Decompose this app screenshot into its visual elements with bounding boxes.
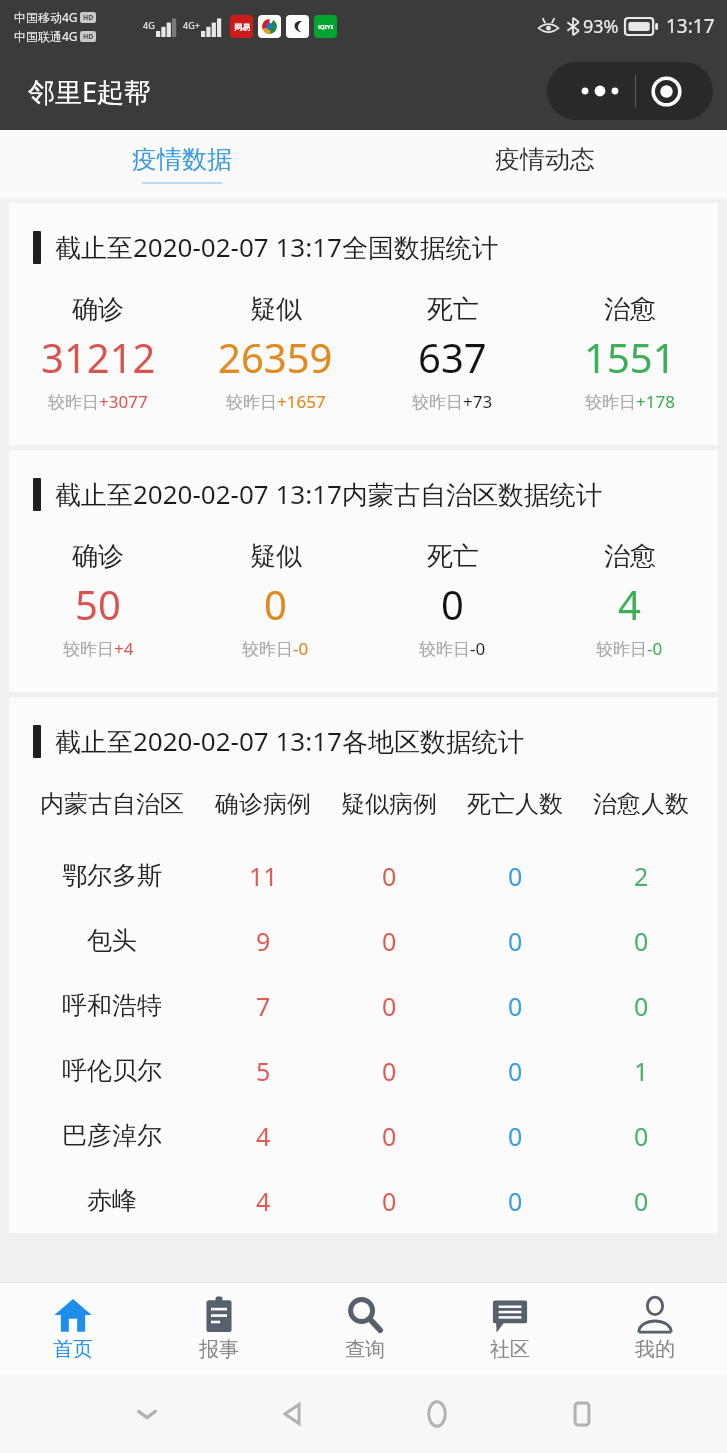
- button[interactable]: Recents: [509, 1375, 654, 1453]
- button[interactable]: 首页: [0, 1283, 146, 1375]
- staticText: 截止至2020-02-07 13:17各地区数据统计: [55, 723, 524, 759]
- staticText: 较昨日-0: [596, 637, 663, 660]
- staticText: 0: [382, 1054, 397, 1088]
- button[interactable]: 呼伦贝尔: [23, 1038, 704, 1103]
- staticText: 包头: [87, 925, 137, 956]
- staticText: 0: [441, 577, 464, 631]
- button[interactable]: 疫情数据: [0, 130, 363, 198]
- staticText: 中国联通4G: [14, 28, 78, 44]
- button[interactable]: Back: [219, 1375, 364, 1453]
- button[interactable]: 疫情动态: [363, 130, 727, 198]
- staticText: 确诊: [72, 540, 124, 573]
- staticText: 0: [382, 1184, 397, 1218]
- button[interactable]: 报事: [146, 1283, 292, 1375]
- button[interactable]: Hide: [74, 1375, 219, 1453]
- staticText: 4: [256, 1119, 271, 1153]
- staticText: 1551: [584, 330, 676, 384]
- staticText: 0: [508, 1054, 523, 1088]
- staticText: 较昨日+73: [412, 390, 493, 413]
- staticText: 较昨日+1657: [226, 390, 326, 413]
- staticText: 4: [618, 577, 641, 631]
- staticText: 0: [382, 989, 397, 1023]
- staticText: 呼和浩特: [62, 990, 162, 1021]
- staticText: 4G: [143, 19, 155, 31]
- staticText: 0: [508, 1184, 523, 1218]
- button[interactable]: 社区: [437, 1283, 582, 1375]
- staticText: 较昨日+3077: [48, 390, 148, 413]
- staticText: 0: [634, 1119, 649, 1153]
- staticText: 637: [418, 330, 487, 384]
- staticText: 网易: [234, 22, 250, 32]
- staticText: 巴彦淖尔: [62, 1120, 162, 1151]
- staticText: 0: [508, 924, 523, 958]
- staticText: 我的: [635, 1337, 675, 1362]
- staticText: 0: [382, 1119, 397, 1153]
- staticText: 较昨日-0: [242, 637, 309, 660]
- button[interactable]: 巴彦淖尔: [23, 1103, 704, 1168]
- staticText: 9: [256, 924, 271, 958]
- staticText: 0: [634, 924, 649, 958]
- button[interactable]: 包头: [23, 908, 704, 973]
- staticText: 2: [634, 859, 649, 893]
- staticText: HD: [83, 13, 94, 23]
- staticText: 11: [249, 859, 278, 893]
- staticText: 疫情数据: [132, 144, 232, 175]
- staticText: 93%: [583, 14, 619, 39]
- staticText: 疑似: [250, 293, 302, 326]
- staticText: 0: [634, 1184, 649, 1218]
- staticText: 50: [75, 577, 121, 631]
- staticText: 0: [508, 1119, 523, 1153]
- staticText: iQIYI: [318, 23, 333, 31]
- staticText: 5: [256, 1054, 271, 1088]
- button[interactable]: 赤峰: [23, 1168, 704, 1233]
- staticText: 较昨日+178: [585, 390, 675, 413]
- staticText: 疑似病例: [341, 789, 437, 819]
- staticText: 呼伦贝尔: [62, 1055, 162, 1086]
- staticText: 13:17: [666, 13, 715, 39]
- staticText: 死亡: [427, 293, 479, 326]
- staticText: 确诊: [72, 293, 124, 326]
- button[interactable]: 查询: [292, 1283, 437, 1375]
- staticText: 0: [508, 859, 523, 893]
- staticText: 治愈: [604, 540, 656, 573]
- staticText: 较昨日-0: [419, 637, 486, 660]
- staticText: 首页: [53, 1337, 93, 1362]
- staticText: 0: [508, 989, 523, 1023]
- staticText: 邻里E起帮: [28, 73, 152, 110]
- staticText: 4G+: [183, 19, 200, 31]
- button[interactable]: 截止至2020-02-07 13:17内蒙古自治区数据统计: [9, 450, 718, 692]
- staticText: 0: [264, 577, 287, 631]
- button[interactable]: 鄂尔多斯: [23, 843, 704, 908]
- staticText: 中国移动4G: [14, 9, 78, 25]
- staticText: 0: [382, 859, 397, 893]
- button[interactable]: Menu and exit: [547, 62, 713, 120]
- staticText: 疑似: [250, 540, 302, 573]
- staticText: 赤峰: [87, 1185, 137, 1216]
- staticText: 7: [256, 989, 271, 1023]
- staticText: 报事: [199, 1337, 239, 1362]
- button[interactable]: 截止至2020-02-07 13:17全国数据统计: [9, 203, 718, 445]
- staticText: 截止至2020-02-07 13:17全国数据统计: [55, 229, 498, 265]
- staticText: 死亡: [427, 540, 479, 573]
- staticText: 鄂尔多斯: [62, 860, 162, 891]
- staticText: 截止至2020-02-07 13:17内蒙古自治区数据统计: [55, 476, 602, 512]
- staticText: 0: [382, 924, 397, 958]
- staticText: 26359: [218, 330, 333, 384]
- staticText: 治愈人数: [593, 789, 689, 819]
- staticText: HD: [83, 32, 94, 42]
- button[interactable]: Home: [364, 1375, 509, 1453]
- staticText: 死亡人数: [467, 789, 563, 819]
- staticText: 内蒙古自治区: [40, 789, 184, 819]
- staticText: 31212: [41, 330, 156, 384]
- button[interactable]: 呼和浩特: [23, 973, 704, 1038]
- staticText: 疫情动态: [495, 144, 595, 175]
- staticText: 治愈: [604, 293, 656, 326]
- staticText: 查询: [345, 1337, 385, 1362]
- staticText: 4: [256, 1184, 271, 1218]
- staticText: 较昨日+4: [63, 637, 134, 660]
- button[interactable]: 我的: [582, 1283, 727, 1375]
- staticText: 1: [634, 1054, 649, 1088]
- staticText: 社区: [490, 1337, 530, 1362]
- staticText: 确诊病例: [215, 789, 311, 819]
- staticText: 0: [634, 989, 649, 1023]
